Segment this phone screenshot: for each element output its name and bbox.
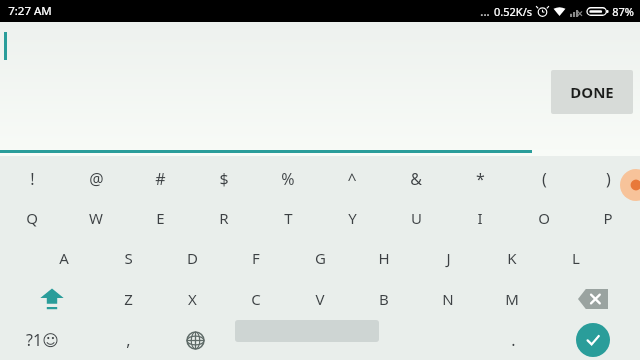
staticText: C	[251, 289, 261, 309]
staticText: V	[315, 289, 325, 309]
button[interactable]: G	[288, 238, 352, 278]
staticText: ...	[480, 4, 490, 19]
button[interactable]: !	[0, 159, 64, 199]
button[interactable]: C	[224, 279, 288, 319]
button[interactable]: J	[416, 238, 480, 278]
staticText: .	[511, 329, 516, 351]
staticText: T	[284, 208, 293, 228]
button[interactable]: R	[192, 198, 256, 238]
staticText: M	[505, 289, 519, 309]
button[interactable]: S	[96, 238, 160, 278]
button[interactable]: Q	[0, 198, 64, 238]
button[interactable]: Backspace	[561, 279, 625, 319]
staticText: S	[124, 248, 133, 268]
staticText: W	[89, 208, 103, 228]
button[interactable]: @	[64, 159, 128, 199]
button[interactable]: I	[448, 198, 512, 238]
button[interactable]: *	[448, 159, 512, 199]
staticText: 87%	[612, 4, 634, 19]
staticText: U	[411, 208, 422, 228]
staticText: ,	[126, 329, 131, 351]
button[interactable]: (	[512, 159, 576, 199]
button[interactable]: O	[512, 198, 576, 238]
button[interactable]: F	[224, 238, 288, 278]
staticText: Q	[26, 208, 38, 228]
button[interactable]: U	[384, 198, 448, 238]
staticText: Z	[124, 289, 133, 309]
button[interactable]: P	[576, 198, 640, 238]
staticText: (	[542, 168, 547, 190]
button[interactable]: E	[128, 198, 192, 238]
button[interactable]: DONE	[551, 70, 633, 114]
button[interactable]: Shift	[20, 279, 84, 319]
button[interactable]: M	[480, 279, 544, 319]
staticText: R	[219, 208, 229, 228]
staticText: L	[572, 248, 580, 268]
button[interactable]: $	[192, 159, 256, 199]
staticText: %	[281, 168, 295, 190]
staticText: J	[446, 248, 451, 268]
staticText: X	[188, 289, 197, 309]
button[interactable]: Symbols and emoji	[5, 320, 79, 360]
button[interactable]: Z	[96, 279, 160, 319]
button[interactable]: L	[544, 238, 608, 278]
staticText: &	[410, 168, 422, 190]
staticText: H	[378, 248, 390, 268]
button[interactable]: %	[256, 159, 320, 199]
button[interactable]: ^	[320, 159, 384, 199]
staticText: Y	[348, 208, 357, 228]
staticText: DONE	[570, 82, 614, 102]
staticText: G	[315, 248, 326, 268]
staticText: N	[442, 289, 454, 309]
button[interactable]: N	[416, 279, 480, 319]
button[interactable]: A	[32, 238, 96, 278]
staticText: !	[30, 168, 35, 190]
staticText: A	[59, 248, 69, 268]
button[interactable]: K	[480, 238, 544, 278]
button[interactable]: Change language	[169, 320, 221, 360]
button[interactable]: V	[288, 279, 352, 319]
button[interactable]: H	[352, 238, 416, 278]
button[interactable]: B	[352, 279, 416, 319]
staticText: ?1☺	[26, 329, 59, 351]
staticText: F	[252, 248, 260, 268]
button[interactable]: Enter	[576, 323, 610, 357]
staticText: *	[476, 168, 485, 190]
button[interactable]: Period	[483, 320, 543, 360]
staticText: $	[219, 168, 229, 190]
staticText: #	[155, 168, 166, 190]
button[interactable]: D	[160, 238, 224, 278]
button[interactable]: T	[256, 198, 320, 238]
button[interactable]: #	[128, 159, 192, 199]
button[interactable]: &	[384, 159, 448, 199]
button[interactable]: )	[576, 159, 640, 199]
staticText: B	[379, 289, 389, 309]
staticText: K	[507, 248, 517, 268]
staticText: O	[538, 208, 550, 228]
staticText: I	[477, 208, 483, 228]
staticText: 7:27 AM	[8, 3, 52, 19]
button[interactable]: Comma	[98, 320, 158, 360]
staticText: D	[187, 248, 198, 268]
button[interactable]: W	[64, 198, 128, 238]
staticText: )	[606, 168, 611, 190]
staticText: E	[156, 208, 165, 228]
staticText: ^	[347, 168, 357, 190]
staticText: 0.52K/s	[494, 4, 532, 19]
button[interactable]: Y	[320, 198, 384, 238]
staticText: P	[603, 208, 613, 228]
button[interactable]: X	[160, 279, 224, 319]
staticText: @	[89, 168, 104, 190]
